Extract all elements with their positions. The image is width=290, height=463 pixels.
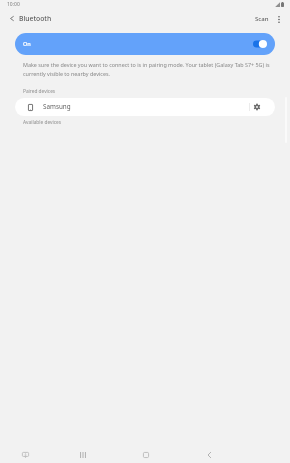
staticText: Samsung [43,102,71,111]
button[interactable]: Recent apps [71,443,94,463]
button[interactable]: Hide keyboard [14,443,37,463]
button[interactable]: On [15,33,275,55]
staticText: On [23,40,31,47]
button[interactable]: More options [271,12,286,27]
button[interactable]: Device settings [246,98,268,116]
staticText: Make sure the device you want to connect… [23,61,271,78]
button[interactable]: Back [198,443,221,463]
button[interactable]: Home [134,443,157,463]
staticText: Bluetooth [19,14,52,23]
button[interactable]: Samsung [15,98,275,116]
button[interactable]: Scan [252,11,272,26]
staticText: Available devices [23,119,62,126]
staticText: 10:00 [7,1,20,8]
staticText: Paired devices [23,88,56,95]
button[interactable]: Navigate up [3,10,20,27]
staticText: Scan [255,15,269,23]
